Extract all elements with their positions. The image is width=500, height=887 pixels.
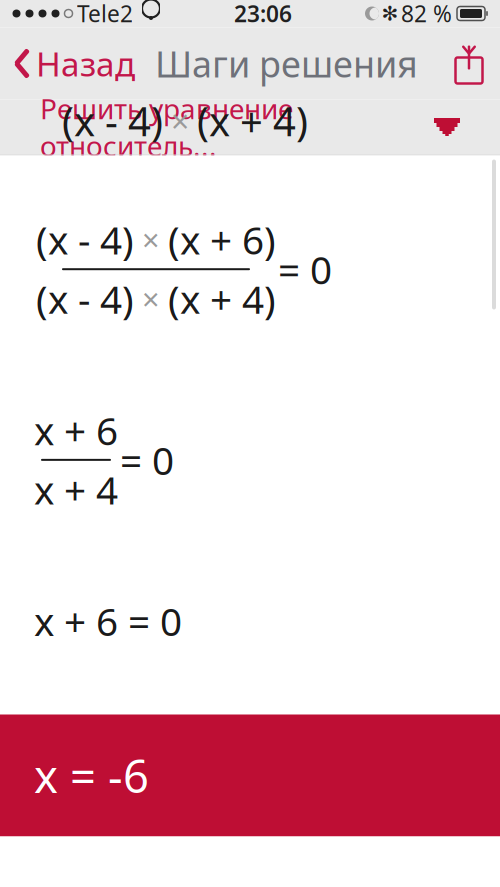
staticText: ×: [134, 219, 168, 260]
staticText: x + 6: [34, 404, 118, 456]
button[interactable]: Поделиться: [438, 32, 500, 94]
staticText: ×: [163, 100, 197, 142]
staticText: (x + 4): [197, 94, 308, 147]
staticText: 23:06: [234, 0, 292, 28]
staticText: Tele2: [77, 0, 133, 28]
staticText: (x - 4): [36, 214, 134, 265]
button[interactable]: Решить уравнение относитель...: [0, 99, 500, 154]
staticText: Назад: [36, 41, 135, 86]
staticText: ✻: [381, 2, 398, 25]
staticText: Решить уравнение относитель...: [40, 90, 293, 164]
button[interactable]: Назад: [0, 29, 149, 98]
staticText: Шаги решения: [155, 40, 418, 87]
staticText: x = -6 , x ≠ 4 , x ≠ -4: [34, 717, 384, 766]
staticText: ×: [134, 278, 168, 319]
staticText: (x - 4): [62, 94, 163, 147]
staticText: (x + 6): [168, 214, 276, 265]
staticText: (x - 4): [36, 273, 134, 324]
staticText: (x + 4): [168, 273, 276, 324]
staticText: 82 %: [401, 0, 452, 28]
staticText: x + 6 = 0: [34, 595, 182, 646]
staticText: x + 4: [34, 464, 118, 515]
staticText: x = -6: [34, 745, 149, 806]
staticText: = 0: [278, 243, 332, 295]
staticText: = 0: [120, 434, 174, 485]
